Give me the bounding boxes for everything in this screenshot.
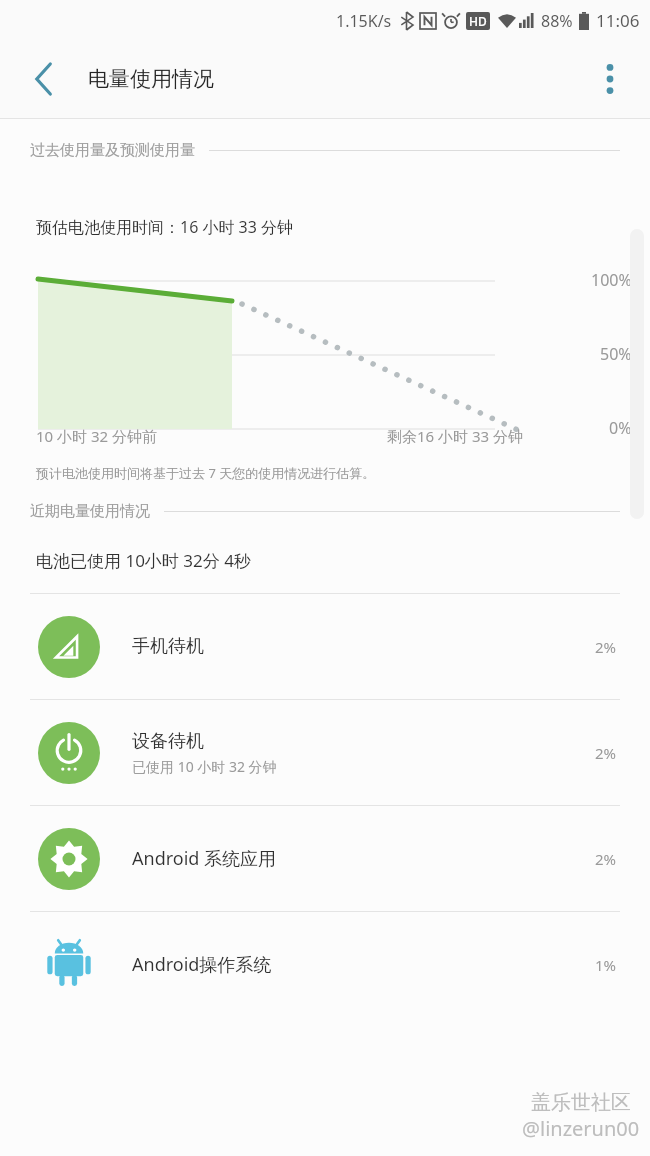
- staticText: 88%: [541, 10, 573, 32]
- button[interactable]: More options: [584, 53, 636, 105]
- staticText: 100%: [591, 269, 632, 291]
- staticText: 50%: [600, 343, 632, 365]
- staticText: 过去使用量及预测使用量: [30, 141, 195, 160]
- staticText: 盖乐世社区: [531, 1090, 631, 1115]
- staticText: 剩余16 小时 33 分钟: [387, 426, 524, 446]
- button[interactable]: Android 系统应用: [0, 806, 650, 911]
- button[interactable]: Back: [18, 53, 70, 105]
- staticText: 电量使用情况: [88, 66, 214, 92]
- staticText: 1%: [594, 955, 616, 975]
- staticText: 设备待机: [132, 730, 204, 753]
- button[interactable]: 手机待机: [0, 594, 650, 699]
- staticText: 已使用 10 小时 32 分钟: [132, 757, 277, 776]
- staticText: 预估电池使用时间：16 小时 33 分钟: [36, 216, 294, 238]
- staticText: 0%: [609, 417, 632, 439]
- staticText: 2%: [594, 849, 616, 869]
- staticText: 11:06: [596, 9, 640, 32]
- staticText: 2%: [594, 743, 616, 763]
- staticText: 1.15K/s: [336, 10, 392, 32]
- staticText: 预计电池使用时间将基于过去 7 天您的使用情况进行估算。: [36, 464, 376, 482]
- staticText: 近期电量使用情况: [30, 502, 150, 521]
- button[interactable]: Android操作系统: [0, 912, 650, 1017]
- staticText: 10 小时 32 分钟前: [36, 426, 158, 446]
- staticText: @linzerun00: [522, 1115, 640, 1142]
- staticText: 电池已使用 10小时 32分 4秒: [36, 549, 251, 572]
- staticText: 手机待机: [132, 635, 204, 658]
- staticText: HD: [469, 13, 487, 29]
- button[interactable]: 设备待机: [0, 700, 650, 805]
- staticText: Android 系统应用: [132, 846, 277, 871]
- staticText: 2%: [594, 637, 616, 657]
- staticText: Android操作系统: [132, 952, 272, 977]
